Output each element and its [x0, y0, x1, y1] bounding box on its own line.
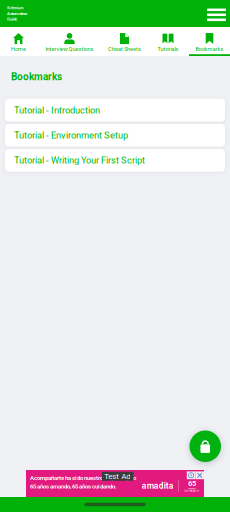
staticText: Tutorial - Writing Your First Script	[14, 155, 145, 166]
staticText: Automation	[7, 11, 27, 16]
staticText: aniversario	[184, 489, 199, 492]
staticText: Home	[11, 46, 26, 52]
button[interactable]: Menu	[205, 1, 228, 26]
staticText: Tutorial - Introduction	[14, 105, 100, 116]
button[interactable]: Cheat Sheets	[102, 27, 147, 56]
staticText: Selenium	[7, 5, 24, 10]
button[interactable]: Tutorial - Environment Setup	[5, 124, 225, 147]
button[interactable]: Tutorial - Writing Your First Script	[5, 149, 225, 172]
button[interactable]: Home	[0, 27, 37, 56]
staticText: Bookmarks	[195, 46, 223, 52]
button[interactable]: Tutorial - Introduction	[5, 99, 225, 122]
button[interactable]: Bookmarks	[189, 27, 230, 56]
staticText: Cheat Sheets	[108, 46, 141, 52]
staticText: amadita	[142, 481, 174, 491]
staticText: Tutorial - Environment Setup	[14, 130, 128, 141]
staticText: Interview Questions	[45, 46, 93, 52]
staticText: Bookmarks	[11, 71, 62, 83]
staticText: 65 años amando, 65 años cuidando.	[30, 483, 117, 490]
staticText: Acompañarte ha sido nuestro mejor regalo	[30, 474, 136, 481]
staticText: Test Ad	[104, 472, 131, 481]
button[interactable]: Unlock premium	[189, 430, 221, 462]
staticText: Tutorials	[157, 46, 178, 52]
button[interactable]: Interview Questions	[37, 27, 102, 56]
staticText: 65	[188, 479, 196, 488]
staticText: Guide	[7, 17, 17, 22]
button[interactable]: Tutorials	[147, 27, 189, 56]
